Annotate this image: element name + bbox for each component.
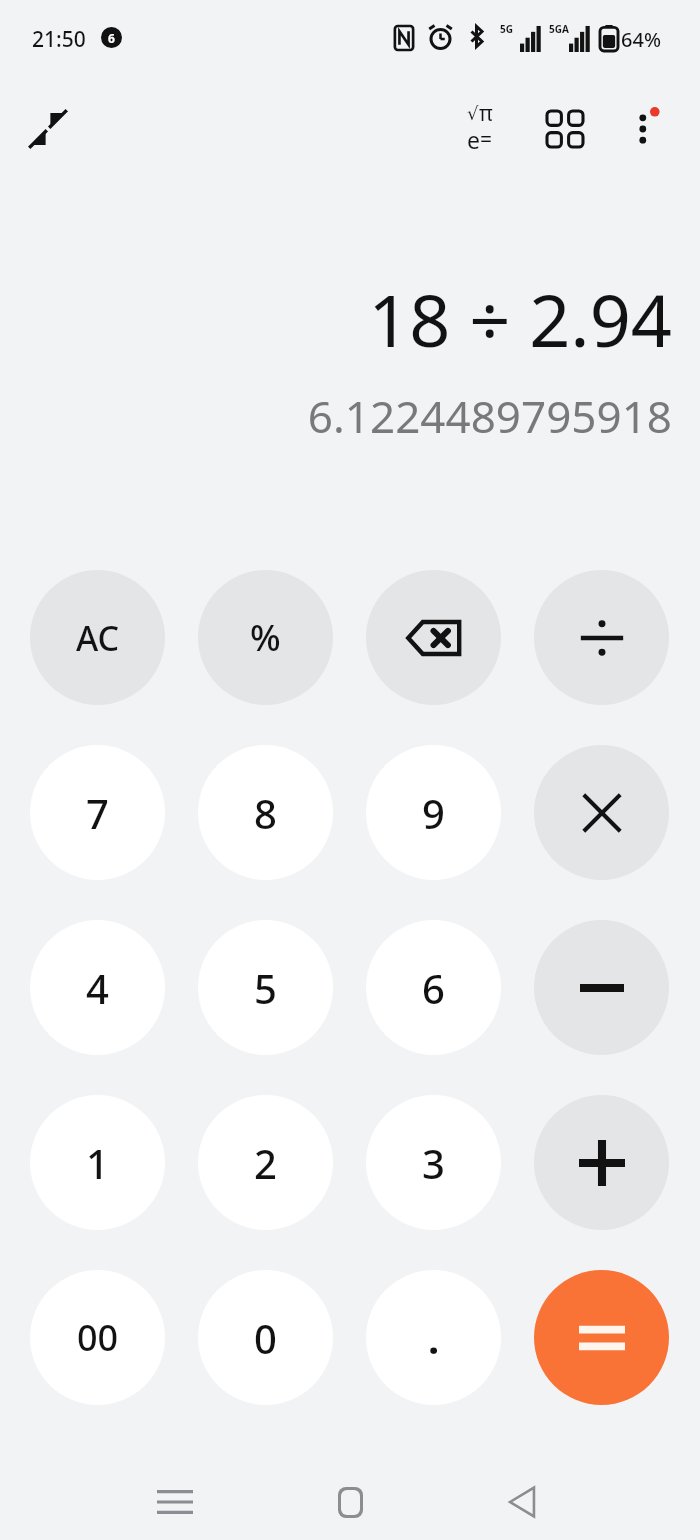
staticText: 3 [422,1136,445,1190]
staticText: 6.1224489795918 [307,386,672,446]
staticText: 1 [86,1136,109,1190]
button[interactable]: 3 [366,1095,501,1230]
button[interactable]: 6 [366,920,501,1055]
staticText: 5G [500,22,513,36]
button[interactable]: Recents [135,1462,215,1540]
button[interactable]: % [198,570,333,705]
button[interactable]: More options [608,91,684,167]
staticText: 21:50 [32,25,86,54]
button[interactable]: 2 [198,1095,333,1230]
button[interactable]: 9 [366,745,501,880]
staticText: 6 [422,961,445,1015]
staticText: 5 [254,961,277,1015]
button[interactable]: Home [310,1462,390,1540]
button[interactable]: 7 [30,745,165,880]
staticText: 18 ÷ 2.94 [368,270,672,368]
staticText: π [479,99,493,128]
staticText: √ [467,103,479,124]
button[interactable]: Back [482,1462,562,1540]
button[interactable]: 8 [198,745,333,880]
button[interactable]: Divide [534,570,669,705]
button[interactable]: Scientific mode [442,91,518,167]
staticText: 5GA [549,22,569,36]
button[interactable]: Minus [534,920,669,1055]
staticText: % [250,613,281,662]
button[interactable]: 0 [198,1270,333,1405]
button[interactable]: . [366,1270,501,1405]
button[interactable]: AC [30,570,165,705]
button[interactable]: Backspace [366,570,501,705]
button[interactable]: 5 [198,920,333,1055]
button[interactable]: Unit converter [527,91,603,167]
button[interactable]: Plus [534,1095,669,1230]
staticText: 7 [86,786,109,840]
staticText: 9 [422,786,445,840]
staticText: . [428,1311,440,1365]
button[interactable]: 00 [30,1270,165,1405]
staticText: = [480,125,493,154]
staticText: 4 [86,961,109,1015]
staticText: 6 [108,30,115,46]
staticText: 0 [254,1311,277,1365]
staticText: 64% [621,26,661,53]
staticText: 8 [254,786,277,840]
staticText: AC [76,615,120,661]
button[interactable]: Multiply [534,745,669,880]
staticText: 2 [254,1136,277,1190]
button[interactable]: 4 [30,920,165,1055]
button[interactable]: Collapse [12,93,84,165]
button[interactable]: 1 [30,1095,165,1230]
staticText: e [467,124,480,155]
staticText: 00 [77,1313,119,1362]
button[interactable]: Equals [534,1270,669,1405]
